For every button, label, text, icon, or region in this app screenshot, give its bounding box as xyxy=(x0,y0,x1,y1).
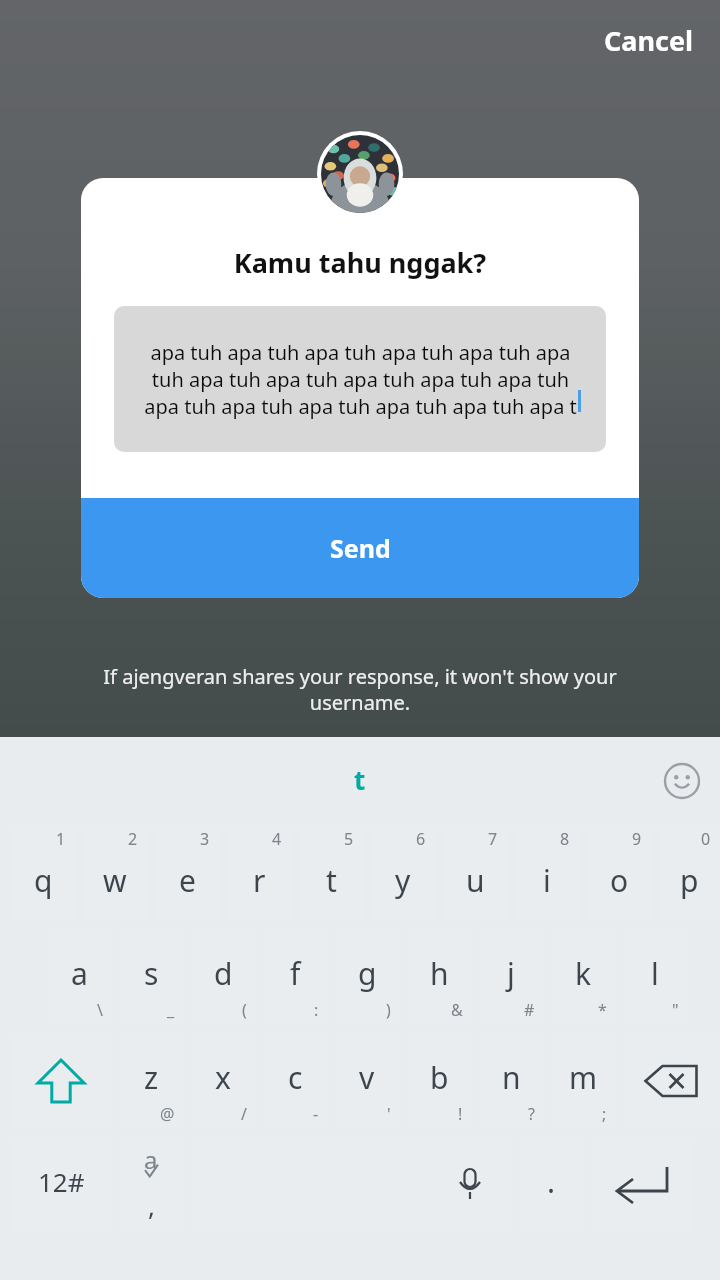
button[interactable]: ? xyxy=(479,1033,543,1129)
staticText: 3 xyxy=(200,828,210,850)
staticText: ' xyxy=(387,1103,391,1125)
staticText: u xyxy=(466,860,485,901)
button[interactable]: @ xyxy=(119,1033,183,1129)
staticText: Send xyxy=(330,531,391,565)
staticText: f xyxy=(290,953,301,994)
staticText: \ xyxy=(97,999,103,1021)
staticText: " xyxy=(672,999,679,1021)
staticText: 7 xyxy=(488,828,498,850)
staticText: ) xyxy=(386,999,391,1021)
staticText: l xyxy=(651,953,659,994)
button[interactable]: & xyxy=(407,929,471,1025)
staticText: 2 xyxy=(128,828,138,850)
staticText: b xyxy=(430,1057,449,1098)
button[interactable]: Send xyxy=(81,498,639,598)
staticText: z xyxy=(144,1057,159,1098)
staticText: p xyxy=(680,860,699,901)
button[interactable]: ' xyxy=(335,1033,399,1129)
staticText: q xyxy=(34,860,53,901)
staticText: j xyxy=(507,953,515,994)
button[interactable]: 6 xyxy=(371,825,435,921)
staticText: o xyxy=(610,860,629,901)
staticText: 5 xyxy=(344,828,354,850)
button[interactable]: Symbols xyxy=(11,1137,111,1233)
button[interactable]: Period xyxy=(519,1137,583,1233)
button[interactable]: " xyxy=(623,929,687,1025)
button[interactable]: 3 xyxy=(155,825,219,921)
staticText: v xyxy=(359,1057,375,1098)
staticText: i xyxy=(543,860,551,901)
button[interactable]: 2 xyxy=(83,825,147,921)
button[interactable]: 1 xyxy=(11,825,75,921)
button[interactable]: 8 xyxy=(515,825,579,921)
staticText: m xyxy=(569,1057,598,1098)
staticText: - xyxy=(313,1103,319,1125)
button[interactable]: t xyxy=(354,762,366,797)
staticText: 9 xyxy=(632,828,642,850)
staticText: g xyxy=(358,953,377,994)
staticText: 4 xyxy=(272,828,282,850)
staticText: ? xyxy=(528,1103,535,1125)
button[interactable]: ! xyxy=(407,1033,471,1129)
button[interactable]: : xyxy=(263,929,327,1025)
button[interactable]: - xyxy=(263,1033,327,1129)
button[interactable]: * xyxy=(551,929,615,1025)
staticText: , xyxy=(148,1188,155,1223)
button[interactable]: Shift xyxy=(11,1033,111,1129)
staticText: ( xyxy=(242,999,247,1021)
staticText: h xyxy=(430,953,449,994)
button[interactable]: 9 xyxy=(587,825,651,921)
button[interactable]: 0 xyxy=(659,825,720,921)
button[interactable]: apa tuh apa tuh apa tuh apa tuh apa tuh … xyxy=(114,306,606,452)
staticText: c xyxy=(288,1057,303,1098)
button[interactable]: _ xyxy=(119,929,183,1025)
staticText: r xyxy=(253,860,266,901)
staticText: 12# xyxy=(38,1164,85,1199)
button[interactable]: # xyxy=(479,929,543,1025)
button[interactable]: 5 xyxy=(299,825,363,921)
button[interactable]: ( xyxy=(191,929,255,1025)
button[interactable]: Space xyxy=(191,1137,511,1233)
staticText: & xyxy=(451,999,463,1021)
staticText: / xyxy=(241,1103,247,1125)
staticText: 8 xyxy=(560,828,570,850)
staticText: ! xyxy=(458,1103,463,1125)
staticText: e xyxy=(179,860,196,901)
staticText: Kamu tahu nggak? xyxy=(81,244,639,281)
staticText: ; xyxy=(602,1103,607,1125)
staticText: apa tuh apa tuh apa tuh apa tuh apa tuh … xyxy=(144,339,577,420)
staticText: a xyxy=(71,953,88,994)
staticText: Cancel xyxy=(604,22,694,59)
staticText: t xyxy=(326,860,337,901)
staticText: _ xyxy=(167,999,175,1021)
staticText: 1 xyxy=(56,828,66,850)
button[interactable]: Enter xyxy=(591,1137,691,1233)
staticText: 6 xyxy=(416,828,426,850)
button[interactable]: Profile photo xyxy=(317,131,403,217)
staticText: 0 xyxy=(701,828,711,850)
button[interactable]: ; xyxy=(551,1033,615,1129)
button[interactable]: Backspace xyxy=(623,1033,720,1129)
staticText: If ajengveran shares your response, it w… xyxy=(40,663,680,716)
staticText: y xyxy=(395,860,411,901)
staticText: s xyxy=(144,953,159,994)
button[interactable]: Emoji xyxy=(662,761,702,801)
staticText: @ xyxy=(160,1103,175,1125)
staticText: x xyxy=(215,1057,231,1098)
button[interactable]: Language and comma xyxy=(119,1137,183,1233)
button[interactable]: Cancel xyxy=(594,14,704,67)
button[interactable]: 7 xyxy=(443,825,507,921)
button[interactable]: \ xyxy=(47,929,111,1025)
staticText: w xyxy=(103,860,127,901)
staticText: d xyxy=(214,953,233,994)
button[interactable]: / xyxy=(191,1033,255,1129)
staticText: * xyxy=(598,999,607,1021)
staticText: n xyxy=(502,1057,521,1098)
button[interactable]: 4 xyxy=(227,825,291,921)
button[interactable]: ) xyxy=(335,929,399,1025)
staticText: # xyxy=(524,999,535,1021)
staticText: : xyxy=(314,999,319,1021)
staticText: . xyxy=(547,1161,556,1202)
staticText: k xyxy=(575,953,592,994)
staticText: a xyxy=(144,1143,158,1176)
